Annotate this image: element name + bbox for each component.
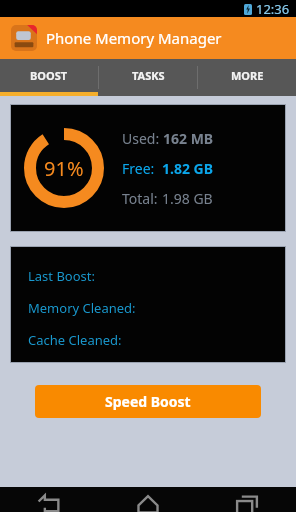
- staticText: BOOST: [30, 68, 68, 83]
- staticText: Last Boost:: [28, 267, 95, 285]
- staticText: 1.98 GB: [162, 189, 213, 208]
- staticText: 91%: [44, 155, 84, 182]
- button[interactable]: BOOST: [0, 59, 98, 96]
- staticText: 12:36: [256, 0, 290, 17]
- staticText: MORE: [231, 68, 264, 83]
- button[interactable]: Last Boost:: [11, 247, 285, 362]
- staticText: Total:: [122, 189, 162, 208]
- staticText: 1.82 GB: [162, 159, 214, 178]
- button[interactable]: Home: [98, 487, 197, 512]
- staticText: Cache Cleaned:: [28, 331, 122, 349]
- button[interactable]: Speed Boost: [35, 385, 261, 418]
- staticText: Free:: [122, 159, 162, 178]
- button[interactable]: 91%: [11, 105, 285, 231]
- button[interactable]: MORE: [198, 59, 296, 96]
- button[interactable]: TASKS: [99, 59, 197, 96]
- staticText: Phone Memory Manager: [46, 28, 222, 48]
- staticText: Speed Boost: [105, 392, 191, 411]
- staticText: 162 MB: [163, 129, 214, 148]
- button[interactable]: Recent apps: [197, 487, 296, 512]
- button[interactable]: Back: [0, 487, 98, 512]
- staticText: TASKS: [132, 68, 165, 83]
- staticText: Memory Cleaned:: [28, 299, 136, 317]
- staticText: Used:: [122, 129, 163, 148]
